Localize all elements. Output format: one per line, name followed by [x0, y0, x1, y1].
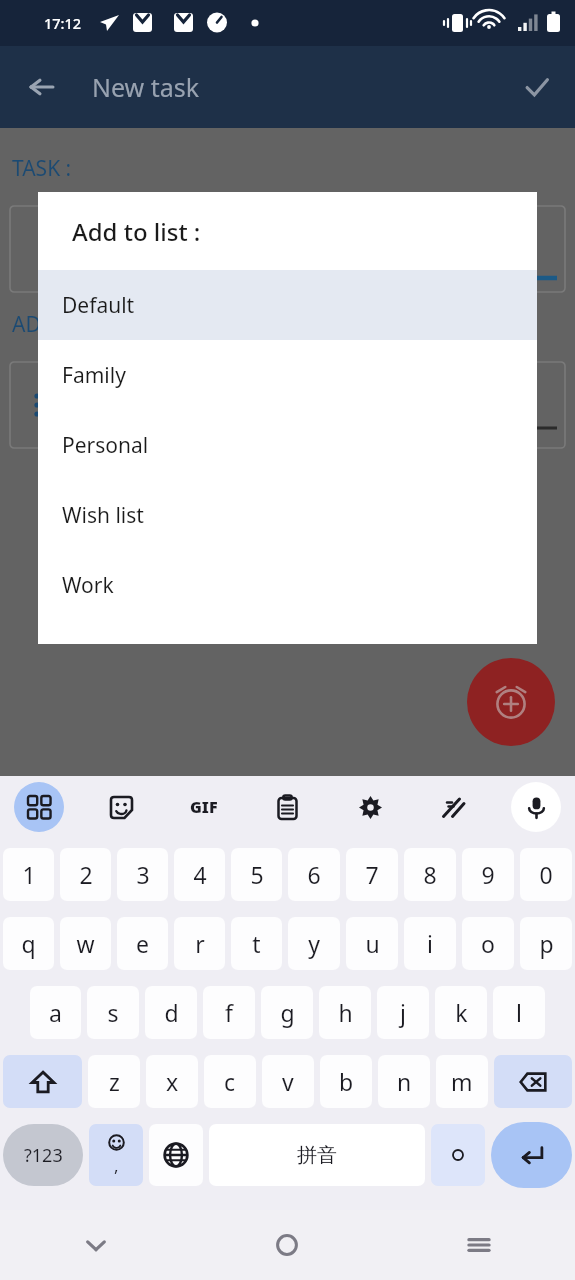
staticText: l	[516, 997, 522, 1028]
button[interactable]: g	[261, 986, 313, 1039]
button[interactable]: Wish list	[38, 480, 537, 550]
button[interactable]: y	[288, 917, 340, 970]
button[interactable]: q	[3, 917, 54, 970]
staticText: e	[136, 928, 149, 959]
staticText: 拼音	[297, 1143, 337, 1168]
button[interactable]: z	[88, 1055, 140, 1108]
button[interactable]: f	[203, 986, 255, 1039]
button[interactable]: o	[462, 917, 514, 970]
staticText: r	[195, 928, 205, 959]
button[interactable]: d	[145, 986, 197, 1039]
staticText: y	[308, 928, 320, 959]
button[interactable]: w	[60, 917, 111, 970]
button[interactable]: Keyboard apps	[14, 782, 64, 832]
button[interactable]: 3	[117, 848, 168, 901]
button[interactable]: Hide keyboard	[0, 1210, 191, 1280]
button[interactable]: Save task	[513, 63, 561, 111]
button[interactable]: Clipboard	[262, 782, 312, 832]
button[interactable]: u	[346, 917, 398, 970]
button[interactable]: Backspace	[494, 1055, 572, 1108]
staticText: Add to list :	[72, 215, 201, 248]
button[interactable]: n	[378, 1055, 430, 1108]
staticText: 5	[250, 859, 264, 890]
button[interactable]: 4	[174, 848, 225, 901]
button[interactable]: 9	[462, 848, 514, 901]
button[interactable]: r	[174, 917, 225, 970]
staticText: 6	[307, 859, 321, 890]
button[interactable]: Period	[431, 1124, 485, 1186]
button[interactable]: Settings	[345, 782, 395, 832]
button[interactable]: 拼音	[209, 1124, 425, 1186]
staticText: Work	[62, 571, 114, 600]
button[interactable]: ?123	[3, 1124, 83, 1186]
button[interactable]: Shift	[3, 1055, 82, 1108]
button[interactable]: k	[435, 986, 487, 1039]
button[interactable]: Default	[38, 270, 537, 340]
staticText: New task	[92, 70, 200, 104]
staticText: 17:12	[44, 13, 82, 33]
button[interactable]: Handwriting	[428, 782, 478, 832]
button[interactable]: x	[146, 1055, 198, 1108]
button[interactable]: Stickers	[96, 782, 146, 832]
staticText: m	[451, 1066, 473, 1097]
staticText: x	[166, 1066, 179, 1097]
staticText: i	[427, 928, 433, 959]
button[interactable]: e	[117, 917, 168, 970]
button[interactable]: Personal	[38, 410, 537, 480]
button[interactable]: l	[493, 986, 545, 1039]
button[interactable]: Change language	[149, 1124, 203, 1186]
staticText: 9	[481, 859, 495, 890]
button[interactable]: Add reminder	[467, 658, 555, 746]
button[interactable]: Recent apps	[383, 1210, 575, 1280]
button[interactable]: 6	[288, 848, 340, 901]
staticText: ?123	[24, 1143, 63, 1168]
button[interactable]: GIF	[179, 782, 229, 832]
button[interactable]: Work	[38, 550, 537, 620]
staticText: p	[539, 928, 554, 959]
button[interactable]: p	[520, 917, 572, 970]
button[interactable]: b	[320, 1055, 372, 1108]
staticText: 2	[79, 859, 93, 890]
staticText: Wish list	[62, 501, 144, 530]
staticText: a	[49, 997, 62, 1028]
button[interactable]: c	[204, 1055, 256, 1108]
staticText: 7	[365, 859, 379, 890]
staticText: GIF	[190, 796, 218, 818]
button[interactable]: 0	[520, 848, 572, 901]
button[interactable]: a	[30, 986, 81, 1039]
button[interactable]: Enter	[491, 1122, 572, 1188]
staticText: Personal	[62, 431, 149, 460]
staticText: TASK :	[12, 154, 72, 183]
staticText: v	[282, 1066, 294, 1097]
button[interactable]: t	[231, 917, 282, 970]
button[interactable]: Voice input	[511, 782, 561, 832]
button[interactable]: Back	[18, 63, 66, 111]
button[interactable]: i	[404, 917, 456, 970]
staticText: Family	[62, 361, 126, 390]
button[interactable]: 1	[3, 848, 54, 901]
staticText: 4	[193, 859, 207, 890]
button[interactable]: 7	[346, 848, 398, 901]
staticText: d	[164, 997, 179, 1028]
button[interactable]: j	[377, 986, 429, 1039]
staticText: ,	[114, 1154, 119, 1177]
button[interactable]: m	[436, 1055, 488, 1108]
button[interactable]: Family	[38, 340, 537, 410]
button[interactable]: Home	[191, 1210, 383, 1280]
staticText: o	[481, 928, 495, 959]
button[interactable]: v	[262, 1055, 314, 1108]
staticText: u	[365, 928, 380, 959]
button[interactable]: 5	[231, 848, 282, 901]
staticText: h	[338, 997, 353, 1028]
button[interactable]: 2	[60, 848, 111, 901]
staticText: z	[109, 1066, 120, 1097]
button[interactable]: 8	[404, 848, 456, 901]
button[interactable]: Emoji and comma	[89, 1124, 143, 1186]
staticText: f	[225, 997, 233, 1028]
staticText: g	[280, 997, 295, 1028]
staticText: 3	[136, 859, 150, 890]
staticText: ADD	[12, 310, 57, 339]
button[interactable]: s	[87, 986, 139, 1039]
button[interactable]: h	[319, 986, 371, 1039]
staticText: q	[21, 928, 36, 959]
